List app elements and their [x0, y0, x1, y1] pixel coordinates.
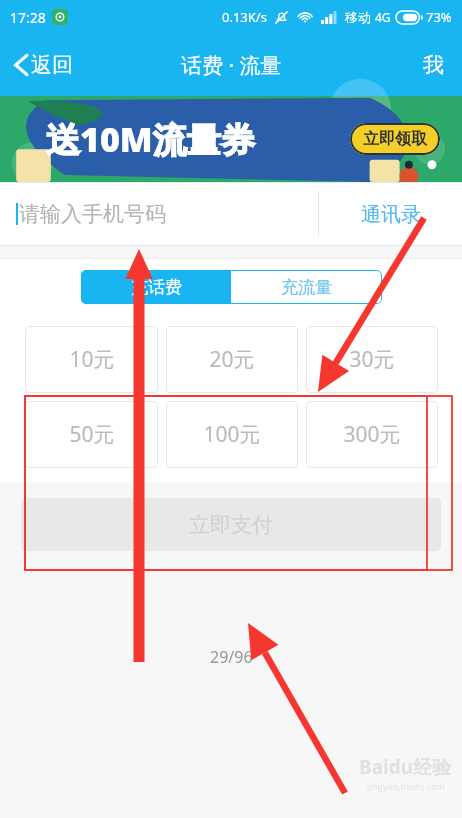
- button[interactable]: 10元: [25, 326, 158, 393]
- button[interactable]: 充话费: [81, 270, 231, 304]
- staticText: 73%: [426, 8, 452, 26]
- button[interactable]: 30元: [306, 326, 438, 393]
- staticText: 送10M流量券: [46, 116, 255, 162]
- button[interactable]: 立即领取: [350, 123, 440, 155]
- button[interactable]: 立即支付: [21, 498, 441, 551]
- button[interactable]: 300元: [306, 401, 438, 468]
- staticText: 4G: [375, 9, 391, 25]
- staticText: Baidu经验: [359, 754, 452, 780]
- staticText: 29/96: [210, 646, 253, 668]
- button[interactable]: 送10M流量券: [0, 96, 462, 182]
- staticText: 10元: [69, 345, 115, 374]
- button[interactable]: 充流量: [231, 270, 382, 304]
- staticText: 话费 · 流量: [181, 51, 282, 80]
- staticText: 充流量: [281, 277, 332, 298]
- button[interactable]: 50元: [25, 401, 158, 468]
- button[interactable]: 请输入手机号码: [0, 201, 318, 227]
- staticText: 充话费: [131, 277, 182, 298]
- button[interactable]: 返回: [0, 46, 85, 84]
- staticText: 通讯录: [361, 202, 421, 227]
- button[interactable]: 我: [405, 44, 462, 86]
- staticText: 立即支付: [189, 512, 273, 538]
- staticText: 50元: [69, 420, 115, 449]
- staticText: 移动: [345, 9, 371, 25]
- staticText: 20元: [209, 345, 255, 374]
- staticText: 100元: [203, 420, 261, 449]
- staticText: 300元: [343, 420, 401, 449]
- button[interactable]: 100元: [166, 401, 298, 468]
- staticText: 17:28: [10, 8, 46, 27]
- staticText: 30元: [349, 345, 395, 374]
- staticText: 请输入手机号码: [19, 201, 166, 227]
- staticText: 立即领取: [363, 129, 427, 149]
- button[interactable]: 通讯录: [319, 202, 462, 227]
- staticText: 我: [423, 52, 444, 78]
- staticText: 返回: [31, 52, 73, 78]
- staticText: 0.13K/s: [222, 8, 267, 26]
- staticText: jingyan.baidu.com: [367, 780, 445, 792]
- button[interactable]: 20元: [166, 326, 298, 393]
